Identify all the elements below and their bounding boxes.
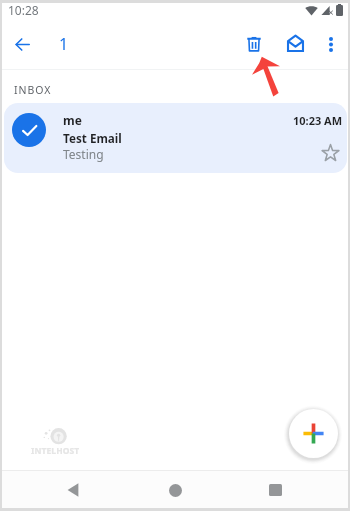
button[interactable]: Recents	[257, 472, 293, 508]
staticText: Testing	[63, 146, 104, 162]
staticText: INTELHOST	[31, 445, 80, 457]
staticText: Test Email	[63, 130, 122, 146]
button[interactable]: Delete	[236, 26, 272, 62]
button[interactable]: me	[4, 103, 347, 173]
button[interactable]: Mark as unread	[277, 25, 313, 61]
button[interactable]: More options	[314, 27, 348, 61]
button[interactable]: 1	[46, 26, 82, 62]
button[interactable]: Back	[55, 472, 91, 508]
staticText: INBOX	[14, 83, 52, 97]
staticText: 10:28	[8, 2, 39, 18]
button[interactable]: Back	[4, 26, 40, 62]
button[interactable]: Star	[317, 139, 343, 165]
staticText: 1	[59, 33, 69, 55]
staticText: 10:23 AM	[293, 113, 343, 128]
button[interactable]: Home	[157, 472, 193, 508]
staticText: me	[63, 112, 82, 128]
button[interactable]: Compose	[289, 409, 338, 458]
